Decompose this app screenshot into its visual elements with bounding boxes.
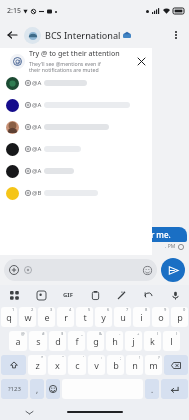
button[interactable]: More options [165, 24, 187, 46]
button[interactable]: @A [0, 94, 152, 116]
staticText: : [101, 355, 103, 360]
staticText: u [120, 311, 126, 323]
staticText: 0 [183, 307, 186, 312]
button[interactable]: g [87, 331, 104, 351]
staticText: q [6, 311, 12, 323]
button[interactable]: Undo [139, 286, 157, 304]
staticText: t [83, 311, 87, 323]
button[interactable]: Period [145, 379, 159, 399]
button[interactable]: Try @ to get their attention [8, 49, 150, 73]
button[interactable]: z [28, 355, 46, 375]
button[interactable]: @B [0, 182, 152, 204]
staticText: 4 [69, 307, 72, 312]
button[interactable]: x [48, 355, 66, 375]
button[interactable]: e [38, 307, 55, 327]
staticText: n [132, 359, 138, 371]
staticText: 9 [164, 307, 167, 312]
button[interactable]: u [114, 307, 131, 327]
button[interactable]: Send [161, 258, 185, 282]
staticText: 8 [145, 307, 148, 312]
staticText: z [35, 359, 40, 371]
button[interactable]: ?123 [1, 379, 28, 399]
button[interactable]: i [133, 307, 150, 327]
button[interactable]: c [68, 355, 86, 375]
button[interactable]: Voice input [166, 286, 184, 304]
staticText: ?123 [8, 385, 21, 393]
button[interactable]: j [125, 331, 142, 351]
button[interactable]: Backspace [164, 355, 188, 375]
staticText: h [112, 335, 118, 347]
button[interactable]: @A [0, 138, 152, 160]
staticText: o [158, 311, 164, 323]
staticText: ? [158, 355, 160, 360]
button[interactable]: b [107, 355, 124, 375]
staticText: p [177, 311, 183, 323]
button[interactable]: BCS International [45, 29, 165, 41]
staticText: w [24, 311, 32, 323]
button[interactable]: Shift [1, 355, 26, 375]
button[interactable]: Apps [5, 286, 23, 304]
button[interactable]: Clipboard [86, 286, 104, 304]
staticText: + [137, 331, 140, 336]
staticText: BCS International [45, 29, 121, 41]
staticText: a [15, 335, 21, 347]
staticText: ! [139, 355, 141, 360]
button[interactable] [4, 259, 157, 281]
button[interactable]: a [9, 331, 27, 351]
button[interactable]: @A [0, 116, 152, 138]
button[interactable]: d [49, 331, 66, 351]
button[interactable]: t [76, 307, 93, 327]
button[interactable]: w [19, 307, 36, 327]
staticText: 3 [50, 307, 53, 312]
staticText: @A [32, 123, 42, 131]
staticText: 2:15 [7, 6, 21, 16]
staticText: c [75, 359, 80, 371]
staticText: i [140, 311, 143, 323]
staticText: x [55, 359, 60, 371]
button[interactable]: o [152, 307, 169, 327]
button[interactable]: Dismiss [132, 52, 150, 70]
staticText: # [42, 331, 45, 336]
staticText: j [132, 335, 135, 347]
button[interactable]: q [1, 307, 17, 327]
button[interactable]: @A [0, 72, 152, 94]
button[interactable]: @A [0, 160, 152, 182]
button[interactable]: or me. [143, 227, 187, 242]
button[interactable]: Enter [161, 379, 188, 399]
staticText: ; [120, 355, 122, 360]
staticText: ( [157, 331, 159, 336]
button[interactable]: k [144, 331, 161, 351]
staticText: @A [32, 79, 42, 87]
staticText: 5 [88, 307, 91, 312]
staticText: ) [176, 331, 178, 336]
button[interactable]: h [106, 331, 123, 351]
button[interactable]: Back [0, 23, 24, 47]
button[interactable]: Magic [112, 286, 130, 304]
staticText: , [36, 384, 39, 395]
staticText: e [44, 311, 50, 323]
button[interactable]: m [145, 355, 162, 375]
staticText: k [150, 335, 155, 347]
button[interactable]: p [171, 307, 188, 327]
button[interactable]: v [88, 355, 105, 375]
button[interactable]: f [68, 331, 85, 351]
button[interactable]: y [95, 307, 112, 327]
button[interactable]: Stickers [32, 286, 50, 304]
staticText: y [101, 311, 106, 323]
staticText: @A [32, 145, 42, 153]
button[interactable]: r [57, 307, 74, 327]
button[interactable]: s [29, 331, 47, 351]
button[interactable]: Emoji [46, 379, 60, 399]
staticText: 7 [126, 307, 129, 312]
staticText: 1 [12, 307, 15, 312]
button[interactable]: l [163, 331, 180, 351]
button[interactable]: Comma [30, 379, 44, 399]
staticText: @A [32, 167, 42, 175]
staticText: . [151, 384, 154, 395]
button[interactable]: Hide keyboard [22, 405, 36, 419]
button[interactable]: GIF [59, 286, 77, 304]
button[interactable]: n [126, 355, 143, 375]
staticText: g [93, 335, 99, 347]
staticText: m [149, 359, 158, 371]
